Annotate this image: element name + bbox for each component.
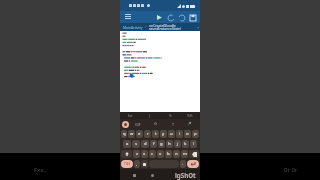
button[interactable]: Space [149,160,179,168]
staticText: p [194,131,197,137]
staticText: b [167,151,170,157]
button[interactable]: z [133,150,140,158]
button[interactable]: %% [180,112,200,119]
staticText: > [145,25,147,29]
button[interactable]: r [144,130,151,138]
staticText: g [160,141,163,147]
staticText: u [170,131,173,137]
staticText: k [184,141,187,147]
button[interactable]: % [160,112,180,119]
button[interactable]: n [173,150,180,158]
staticText: t [155,131,157,137]
staticText: l [193,141,195,147]
staticText: onCreate(Bundle savedInstanceState) [149,23,197,31]
staticText: m [183,151,187,157]
staticText: q [123,131,126,137]
button[interactable]: Symbols [121,160,133,168]
button[interactable]: , [134,160,140,168]
button[interactable]: l [190,140,197,148]
button[interactable]: t [152,130,159,138]
button[interactable]: Home [148,171,156,179]
button[interactable]: w [128,130,135,138]
button[interactable]: v [157,150,164,158]
staticText: n [175,151,178,157]
button[interactable]: Menu [123,12,133,22]
button[interactable]: Redo [176,12,187,23]
button[interactable]: Save [187,12,198,23]
staticText: r [147,131,149,137]
button[interactable]: p [192,130,199,138]
staticText: . [182,161,184,167]
button[interactable]: h [166,140,173,148]
button[interactable]: Shift [121,150,132,158]
staticText: x [143,151,146,157]
button[interactable]: b [165,150,172,158]
staticText: 0r 0r [284,166,298,174]
button[interactable]: Emoji [122,121,129,128]
button[interactable]: j [174,140,181,148]
button[interactable]: c [149,150,156,158]
button[interactable]: x [141,150,148,158]
button[interactable]: o [184,130,191,138]
button[interactable]: Settings [141,160,148,168]
staticText: w [130,131,134,137]
button[interactable]: g [158,140,165,148]
button[interactable]: . [180,160,186,168]
staticText: T [172,122,174,127]
button[interactable]: Keyboard tool GIF [129,119,147,129]
staticText: GIF [135,122,141,127]
button[interactable]: q [121,130,127,138]
staticText: e [138,131,141,137]
button[interactable]: { [140,112,160,119]
staticText: ?123 [124,162,131,166]
button[interactable]: Keyboard tool ⚙ [147,119,164,129]
button[interactable]: y [160,130,167,138]
staticText: d [144,141,147,147]
button[interactable]: for [120,112,140,119]
button[interactable]: a [123,140,131,148]
button[interactable]: m [181,150,188,158]
button[interactable]: u [168,130,175,138]
button[interactable]: Run [154,12,165,23]
button[interactable]: i [176,130,183,138]
button[interactable]: f [150,140,157,148]
button[interactable]: Keyboard tool 🎤 [181,119,198,129]
button[interactable]: Enter [187,160,199,168]
staticText: % [169,113,172,118]
button[interactable]: Backspace [189,150,199,158]
staticText: for [128,113,133,118]
staticText: lgShOt [175,171,196,179]
staticText: Fxx.. [34,166,47,174]
staticText: c [151,151,154,157]
button[interactable]: MainActivity [123,25,143,30]
staticText: %% [187,113,193,118]
staticText: i [179,131,181,137]
button[interactable]: e [136,130,143,138]
staticText: z [136,151,138,157]
staticText: , [136,161,138,167]
button[interactable]: Undo [165,12,176,23]
staticText: { [149,113,151,118]
button[interactable]: s [132,140,140,148]
staticText: a [126,141,129,147]
staticText: f [153,141,155,147]
button[interactable]: d [141,140,149,148]
staticText: v [159,151,162,157]
staticText: ⚙ [154,122,158,126]
staticText: 🎤 [187,122,192,126]
button[interactable]: k [182,140,189,148]
staticText: o [186,131,189,137]
staticText: j [177,141,179,147]
staticText: s [135,141,138,147]
button[interactable]: Back [130,171,138,179]
button[interactable]: Keyboard tool T [164,119,181,129]
staticText: y [162,131,165,137]
staticText: h [168,141,171,147]
